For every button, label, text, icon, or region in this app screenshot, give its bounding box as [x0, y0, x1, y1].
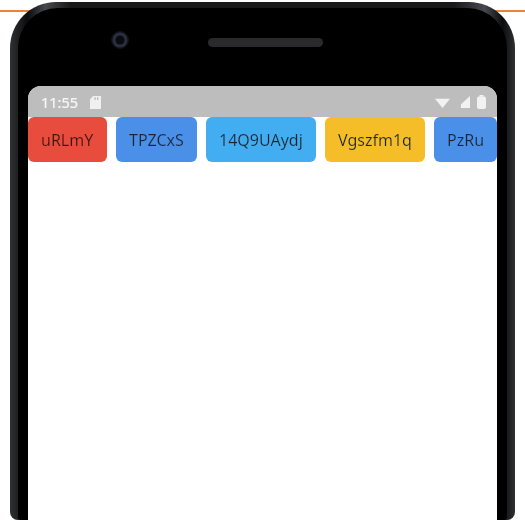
- button[interactable]: uRLmY: [28, 117, 107, 162]
- button[interactable]: 14Q9UAydj: [206, 117, 316, 162]
- button[interactable]: PzRu3g6y: [434, 117, 497, 162]
- staticText: 11:55: [41, 92, 79, 112]
- staticText: 14Q9UAydj: [219, 129, 303, 151]
- button[interactable]: Vgszfm1q: [325, 117, 425, 162]
- staticText: Vgszfm1q: [338, 129, 412, 151]
- staticText: uRLmY: [41, 129, 94, 151]
- button[interactable]: TPZCxS: [116, 117, 197, 162]
- staticText: PzRu3g6y: [447, 129, 484, 151]
- staticText: TPZCxS: [129, 129, 184, 151]
